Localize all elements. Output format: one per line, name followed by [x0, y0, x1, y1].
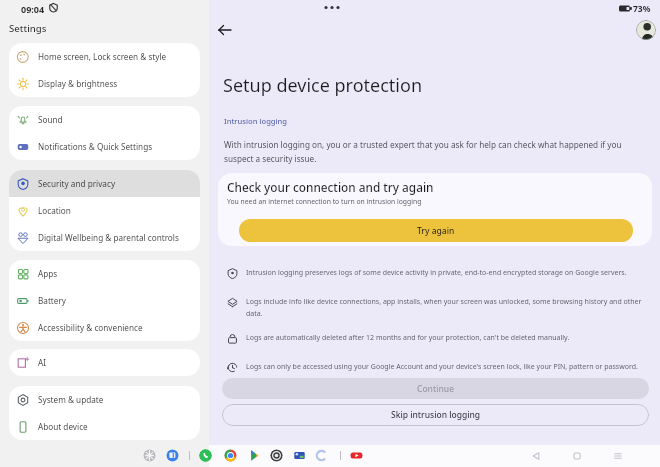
- button[interactable]: Account: [636, 20, 656, 40]
- button[interactable]: Accessibility & convenience: [9, 314, 200, 341]
- staticText: With intrusion logging on, you or a trus…: [224, 139, 636, 164]
- button[interactable]: App: [199, 449, 212, 462]
- button[interactable]: Back: [528, 448, 544, 464]
- staticText: Skip intrusion logging: [391, 409, 481, 421]
- button[interactable]: App: [248, 449, 261, 462]
- staticText: Logs can only be accessed using your Goo…: [246, 362, 638, 372]
- staticText: Intrusion logging preserves logs of some…: [246, 268, 627, 278]
- staticText: Battery: [38, 295, 67, 306]
- button[interactable]: Back: [215, 20, 235, 40]
- staticText: Sound: [38, 114, 63, 125]
- staticText: System & update: [38, 394, 104, 405]
- button[interactable]: Security and privacy: [9, 170, 200, 197]
- staticText: Settings: [9, 22, 47, 35]
- button[interactable]: App: [143, 449, 156, 462]
- button[interactable]: Sound: [9, 106, 200, 133]
- staticText: Location: [38, 205, 71, 216]
- staticText: 09:04: [21, 3, 45, 15]
- button[interactable]: Digital Wellbeing & parental controls: [9, 224, 200, 251]
- button[interactable]: App: [270, 449, 283, 462]
- staticText: Digital Wellbeing & parental controls: [38, 232, 179, 243]
- staticText: Check your connection and try again: [227, 179, 434, 195]
- button[interactable]: Battery: [9, 287, 200, 314]
- button[interactable]: App: [224, 449, 237, 462]
- button[interactable]: Recents: [610, 448, 626, 464]
- staticText: Logs include info like device connection…: [246, 297, 642, 318]
- button[interactable]: Try again: [239, 219, 633, 242]
- button[interactable]: System & update: [9, 386, 200, 413]
- staticText: Logs are automatically deleted after 12 …: [246, 333, 570, 343]
- staticText: Home screen, Lock screen & style: [38, 51, 167, 62]
- staticText: 73%: [633, 3, 651, 15]
- button[interactable]: App: [293, 449, 306, 462]
- button[interactable]: AI: [9, 349, 200, 376]
- staticText: You need an internet connection to turn …: [227, 197, 422, 206]
- button[interactable]: Display & brightness: [9, 70, 200, 97]
- staticText: Try again: [417, 225, 455, 237]
- button[interactable]: Notifications & Quick Settings: [9, 133, 200, 160]
- button[interactable]: Home: [569, 448, 585, 464]
- button[interactable]: App: [315, 449, 328, 462]
- staticText: AI: [38, 357, 47, 368]
- staticText: Intrusion logging: [224, 116, 288, 126]
- staticText: Notifications & Quick Settings: [38, 141, 153, 152]
- button[interactable]: Continue: [222, 378, 649, 399]
- staticText: Apps: [38, 268, 58, 279]
- staticText: Continue: [417, 383, 455, 395]
- button[interactable]: About device: [9, 413, 200, 440]
- button[interactable]: App: [350, 449, 363, 462]
- staticText: Security and privacy: [38, 178, 116, 189]
- staticText: About device: [38, 421, 88, 432]
- button[interactable]: Apps: [9, 260, 200, 287]
- staticText: Display & brightness: [38, 78, 118, 89]
- staticText: Accessibility & convenience: [38, 322, 143, 333]
- staticText: Setup device protection: [223, 73, 423, 98]
- button[interactable]: Location: [9, 197, 200, 224]
- button[interactable]: App: [166, 449, 179, 462]
- button[interactable]: Skip intrusion logging: [222, 404, 649, 426]
- button[interactable]: Home screen, Lock screen & style: [9, 43, 200, 70]
